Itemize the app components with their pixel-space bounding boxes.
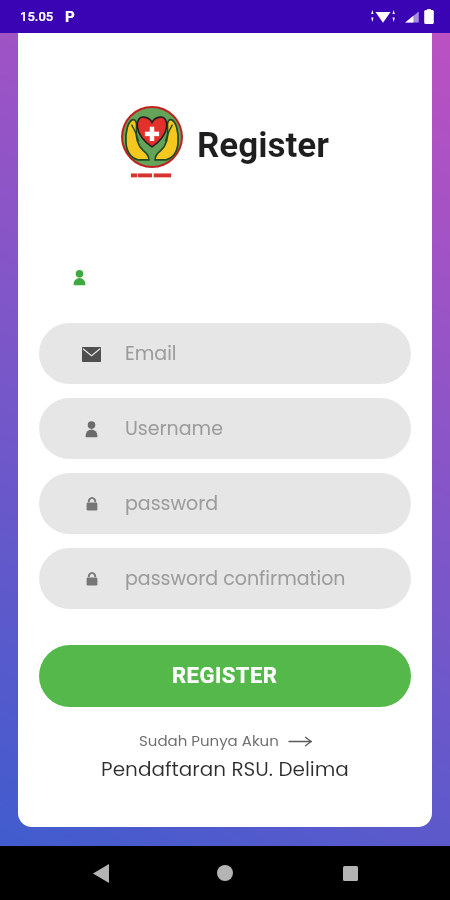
button[interactable]: Back: [77, 849, 125, 897]
staticText: password: [125, 490, 219, 517]
staticText: Sudah Punya Akun: [139, 730, 279, 751]
button[interactable]: Email: [39, 323, 411, 384]
staticText: P: [65, 8, 75, 26]
staticText: Pendaftaran RSU. Delima: [18, 755, 432, 783]
staticText: Username: [125, 415, 223, 442]
staticText: REGISTER: [172, 663, 278, 689]
button[interactable]: Sudah Punya Akun: [18, 730, 432, 751]
button[interactable]: Username: [39, 398, 411, 459]
staticText: password confirmation: [125, 565, 346, 592]
button[interactable]: password: [39, 473, 411, 534]
button[interactable]: Home: [201, 849, 249, 897]
button[interactable]: REGISTER: [39, 645, 411, 707]
staticText: 15.05: [20, 9, 54, 24]
staticText: Email: [125, 340, 177, 367]
staticText: Register: [197, 125, 330, 166]
button[interactable]: password confirmation: [39, 548, 411, 609]
button[interactable]: Recent apps: [326, 849, 374, 897]
